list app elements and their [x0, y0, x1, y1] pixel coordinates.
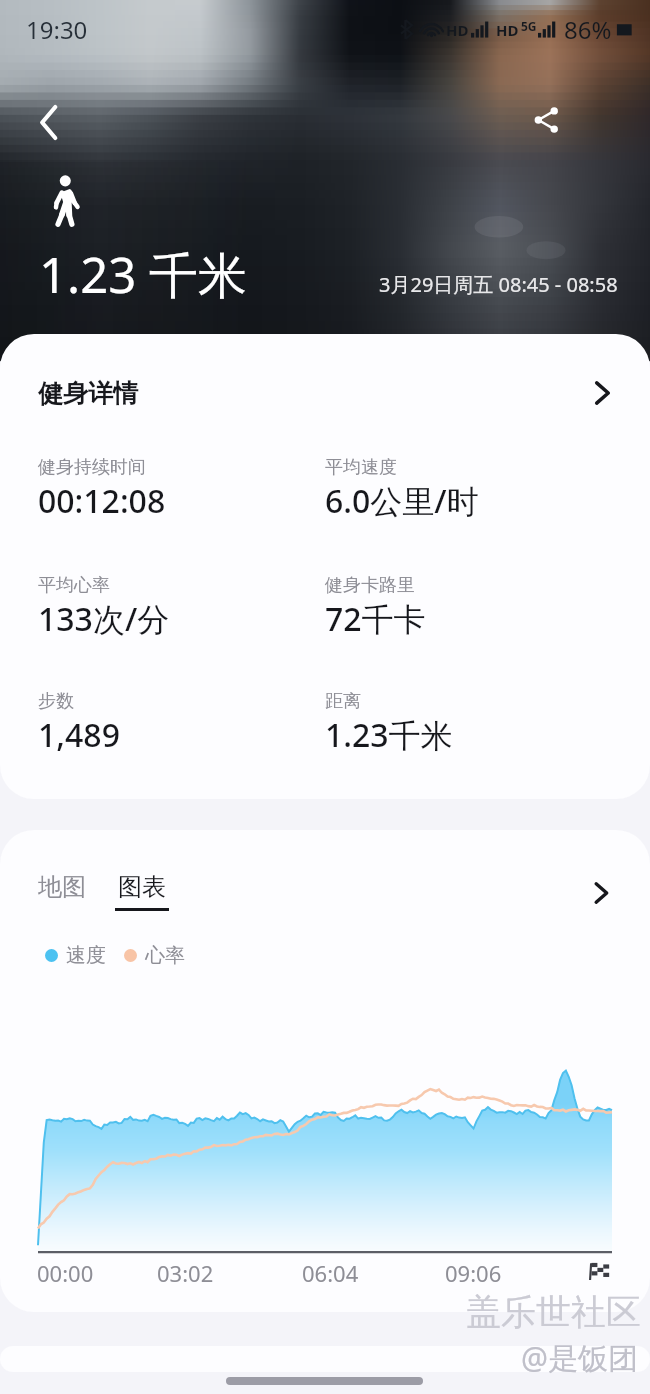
staticText: 3月29日周五 08:45 - 08:58: [379, 271, 618, 298]
staticText: 1,489: [38, 713, 120, 757]
staticText: 距离: [325, 690, 361, 713]
staticText: 72千卡: [325, 597, 426, 641]
staticText: HD: [446, 20, 469, 40]
button[interactable]: Share: [523, 96, 571, 144]
staticText: 00:12:08: [38, 479, 166, 523]
staticText: 健身持续时间: [38, 456, 146, 479]
staticText: 速度: [66, 943, 106, 968]
staticText: 6.0公里/时: [325, 479, 479, 523]
staticText: HD: [496, 20, 519, 40]
staticText: @是饭团: [521, 1337, 638, 1378]
staticText: 地图: [38, 872, 86, 902]
button[interactable]: Open chart: [586, 878, 616, 908]
staticText: 1.23 千米: [39, 241, 247, 308]
staticText: 1.23千米: [325, 713, 453, 757]
staticText: 133次/分: [38, 597, 170, 641]
staticText: 00:00: [37, 1258, 94, 1288]
button[interactable]: 健身详情: [0, 334, 650, 452]
staticText: 健身详情: [38, 378, 138, 409]
staticText: 06:04: [302, 1258, 359, 1288]
staticText: 步数: [38, 690, 74, 713]
staticText: 平均心率: [38, 574, 110, 597]
button[interactable]: 地图: [38, 872, 86, 902]
button[interactable]: 图表: [115, 872, 169, 911]
staticText: 平均速度: [325, 456, 397, 479]
staticText: 心率: [145, 943, 185, 968]
staticText: 盖乐世社区: [466, 1290, 641, 1334]
staticText: 09:06: [445, 1258, 502, 1288]
staticText: 03:02: [157, 1258, 214, 1288]
staticText: 19:30: [26, 13, 88, 46]
staticText: 图表: [118, 872, 166, 902]
staticText: 健身卡路里: [325, 574, 415, 597]
button[interactable]: Back: [25, 98, 73, 146]
staticText: 86%: [564, 13, 612, 46]
staticText: 5G: [521, 18, 537, 34]
